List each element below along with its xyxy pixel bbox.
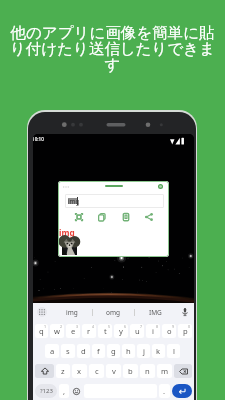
button[interactable]: y	[114, 324, 128, 338]
staticText: 9	[172, 324, 175, 329]
staticText: img	[59, 227, 75, 238]
button[interactable]: t	[98, 324, 112, 338]
button[interactable]: ,	[59, 384, 69, 398]
button[interactable]: n	[140, 364, 155, 378]
staticText: e	[71, 326, 76, 336]
staticText: v	[112, 366, 116, 376]
button[interactable]: Select all	[73, 211, 84, 222]
staticText: 0	[188, 324, 191, 329]
staticText: .	[163, 386, 166, 396]
button[interactable]: r	[82, 324, 96, 338]
button[interactable]: f	[92, 344, 105, 358]
button[interactable]: Close	[157, 183, 164, 190]
staticText: s	[66, 346, 70, 356]
staticText: t	[104, 326, 107, 336]
button[interactable]: a	[45, 344, 59, 358]
button[interactable]: j	[137, 344, 150, 358]
button[interactable]: b	[123, 364, 138, 378]
staticText: p	[183, 326, 188, 336]
staticText: h	[126, 346, 131, 356]
staticText: w	[54, 326, 60, 336]
staticText: l	[173, 346, 175, 356]
staticText: a	[50, 346, 55, 356]
button[interactable]: g	[107, 344, 120, 358]
button[interactable]: Keyboard menu	[37, 307, 47, 317]
staticText: ?123	[40, 387, 53, 395]
staticText: 他のアプリに画像を簡単に貼り付けたり送信したりできます	[4, 23, 221, 75]
staticText: img	[68, 197, 80, 205]
button[interactable]: m	[157, 364, 172, 378]
staticText: i	[152, 326, 154, 336]
staticText: z	[61, 366, 65, 376]
staticText: 3	[76, 324, 79, 329]
button[interactable]: e	[66, 324, 80, 338]
staticText: r	[87, 326, 91, 336]
button[interactable]: .	[159, 384, 170, 398]
staticText: 6	[124, 324, 127, 329]
button[interactable]: Voice input	[182, 308, 188, 316]
staticText: o	[167, 326, 172, 336]
button[interactable]: z	[56, 364, 70, 378]
staticText: n	[145, 366, 150, 376]
staticText: 5	[108, 324, 111, 329]
staticText: img	[66, 308, 78, 317]
staticText: q	[39, 326, 44, 336]
staticText: u	[135, 326, 140, 336]
staticText: IMG	[149, 308, 162, 317]
button[interactable]: Symbols	[35, 384, 57, 398]
button[interactable]: k	[152, 344, 165, 358]
staticText: 7	[140, 324, 143, 329]
button[interactable]: d	[77, 344, 90, 358]
staticText: m	[161, 366, 169, 376]
button[interactable]: Paste	[120, 211, 131, 222]
button[interactable]: Share	[143, 211, 154, 222]
button[interactable]: Shift	[35, 364, 54, 378]
button[interactable]: o	[162, 324, 176, 338]
staticText: ,	[63, 386, 66, 396]
button[interactable]: i	[146, 324, 160, 338]
staticText: b	[128, 366, 133, 376]
staticText: g	[111, 346, 116, 356]
button[interactable]: l	[167, 344, 180, 358]
button[interactable]: v	[106, 364, 121, 378]
button[interactable]: Backspace	[174, 364, 192, 378]
button[interactable]: u	[130, 324, 144, 338]
button[interactable]: s	[61, 344, 75, 358]
staticText: k	[156, 346, 161, 356]
staticText: f	[97, 346, 100, 356]
staticText: 4	[92, 324, 95, 329]
staticText: 8	[156, 324, 159, 329]
button[interactable]: Enter	[172, 384, 192, 398]
staticText: d	[81, 346, 86, 356]
button[interactable]: x	[72, 364, 87, 378]
staticText: x	[77, 366, 82, 376]
button[interactable]: q	[35, 324, 48, 338]
staticText: omg	[106, 308, 121, 317]
staticText: c	[95, 366, 99, 376]
button[interactable]: w	[50, 324, 64, 338]
button[interactable]: Copy	[96, 211, 107, 222]
button[interactable]: Emoji	[71, 384, 82, 398]
staticText: 1	[44, 324, 47, 329]
staticText: 2	[60, 324, 63, 329]
button[interactable]: c	[89, 364, 104, 378]
staticText: 10:10	[33, 136, 44, 142]
button[interactable]: p	[178, 324, 192, 338]
button[interactable]: h	[122, 344, 135, 358]
staticText: j	[143, 346, 145, 356]
staticText: y	[119, 326, 123, 336]
